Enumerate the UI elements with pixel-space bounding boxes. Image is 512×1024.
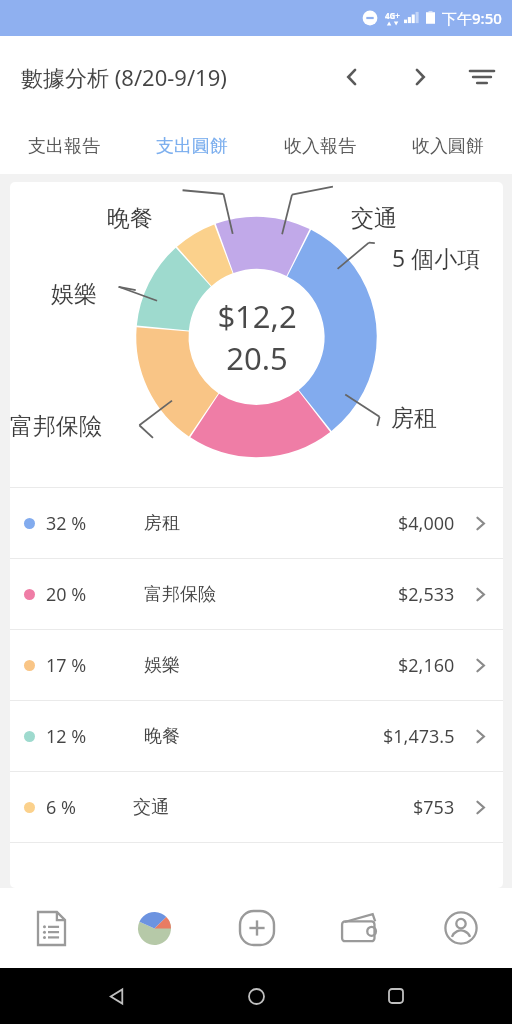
staticText: 交通: [351, 204, 397, 233]
staticText: 娛樂: [144, 654, 180, 677]
button[interactable]: 17 %: [10, 630, 503, 700]
staticText: 支出報告: [28, 135, 100, 158]
staticText: 5 個小項: [392, 242, 481, 273]
button[interactable]: Charts: [103, 888, 206, 968]
staticText: 富邦保險: [10, 412, 102, 441]
staticText: 20 %: [46, 582, 87, 607]
staticText: 晚餐: [144, 725, 180, 748]
staticText: 房租: [391, 404, 437, 433]
staticText: 收入報告: [284, 135, 356, 158]
staticText: 數據分析 (8/20-9/19): [21, 62, 227, 92]
staticText: $1,473.5: [383, 724, 455, 749]
button[interactable]: Add: [206, 888, 308, 968]
button[interactable]: Next period: [396, 53, 444, 101]
staticText: 12 %: [46, 724, 87, 749]
staticText: 6 %: [46, 795, 76, 820]
staticText: 房租: [144, 512, 180, 535]
button[interactable]: 收入圓餅: [384, 118, 512, 174]
button[interactable]: Previous period: [328, 53, 376, 101]
button[interactable]: Back: [92, 972, 140, 1020]
button[interactable]: 收入報告: [256, 118, 384, 174]
staticText: $4,000: [398, 511, 455, 536]
staticText: 支出圓餅: [156, 135, 228, 158]
staticText: 娛樂: [51, 280, 97, 309]
staticText: 交通: [133, 796, 169, 819]
staticText: $2,160: [398, 653, 455, 678]
button[interactable]: 20 %: [10, 559, 503, 629]
button[interactable]: Filter: [458, 53, 506, 101]
button[interactable]: Wallet: [308, 888, 410, 968]
staticText: 32 %: [46, 511, 87, 536]
button[interactable]: 12 %: [10, 701, 503, 771]
button[interactable]: Home: [232, 972, 280, 1020]
staticText: 20.5: [226, 337, 288, 379]
staticText: 收入圓餅: [412, 135, 484, 158]
button[interactable]: 32 %: [10, 488, 503, 558]
staticText: 下午9:50: [442, 8, 502, 28]
staticText: 17 %: [46, 653, 87, 678]
button[interactable]: Recent apps: [372, 972, 420, 1020]
button[interactable]: Profile: [410, 888, 512, 968]
button[interactable]: Reports: [0, 888, 103, 968]
staticText: $12,2: [217, 295, 297, 337]
button[interactable]: 支出圓餅: [128, 118, 256, 174]
staticText: $753: [413, 795, 455, 820]
staticText: $2,533: [398, 582, 455, 607]
staticText: 晚餐: [107, 204, 153, 233]
button[interactable]: 支出報告: [0, 118, 128, 174]
button[interactable]: 6 %: [10, 772, 503, 842]
staticText: 富邦保險: [144, 583, 216, 606]
staticText: 4G+: [385, 10, 400, 21]
